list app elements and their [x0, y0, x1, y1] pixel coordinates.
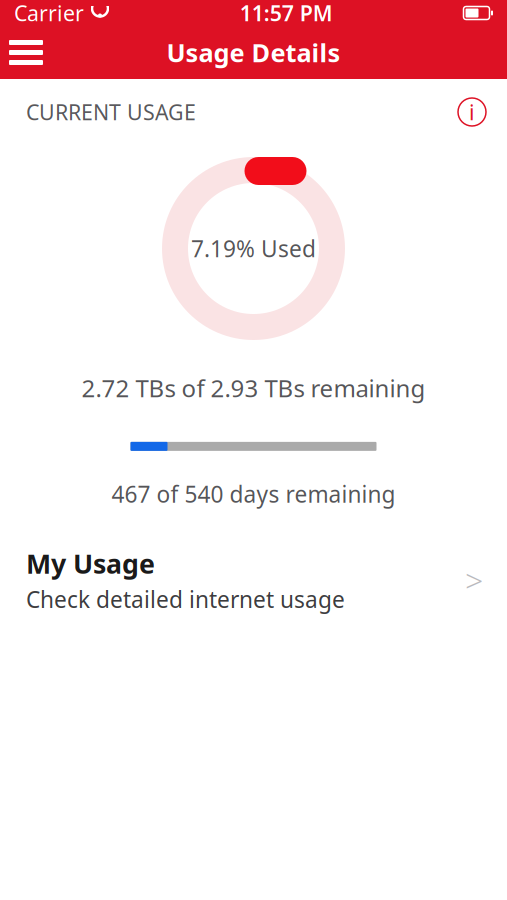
staticText: > [465, 559, 483, 601]
staticText: i [469, 98, 475, 126]
button[interactable]: My Usage [0, 547, 507, 613]
button[interactable]: Information [452, 92, 492, 132]
staticText: Carrier [14, 0, 84, 27]
staticText: CURRENT USAGE [26, 98, 196, 126]
staticText: My Usage [26, 546, 155, 581]
staticText: 2.72 TBs of 2.93 TBs remaining [81, 372, 425, 404]
staticText: 11:57 PM [240, 0, 333, 27]
button[interactable]: Menu [0, 26, 52, 79]
staticText: Usage Details [166, 36, 340, 69]
staticText: Check detailed internet usage [26, 584, 345, 614]
staticText: 7.19% Used [191, 233, 316, 263]
staticText: 467 of 540 days remaining [111, 479, 395, 509]
